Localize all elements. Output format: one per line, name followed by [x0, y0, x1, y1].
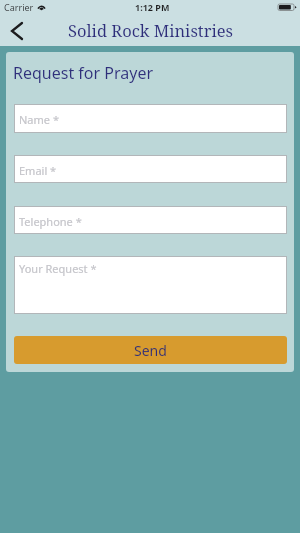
- button[interactable]: Telephone *: [14, 206, 287, 234]
- staticText: Request for Prayer: [13, 62, 154, 84]
- button[interactable]: Your Request *: [14, 256, 287, 314]
- button[interactable]: Back: [0, 20, 34, 46]
- staticText: 1:12 PM: [135, 1, 170, 13]
- staticText: Carrier: [4, 1, 34, 13]
- button[interactable]: Email *: [14, 155, 287, 183]
- button[interactable]: Name *: [14, 104, 287, 133]
- staticText: Solid Rock Ministries: [68, 19, 233, 41]
- staticText: Send: [134, 341, 167, 360]
- staticText: Name *: [19, 112, 59, 127]
- staticText: Your Request *: [19, 261, 97, 276]
- button[interactable]: Send: [14, 336, 287, 364]
- staticText: Email *: [19, 163, 57, 178]
- staticText: Telephone *: [19, 214, 82, 229]
